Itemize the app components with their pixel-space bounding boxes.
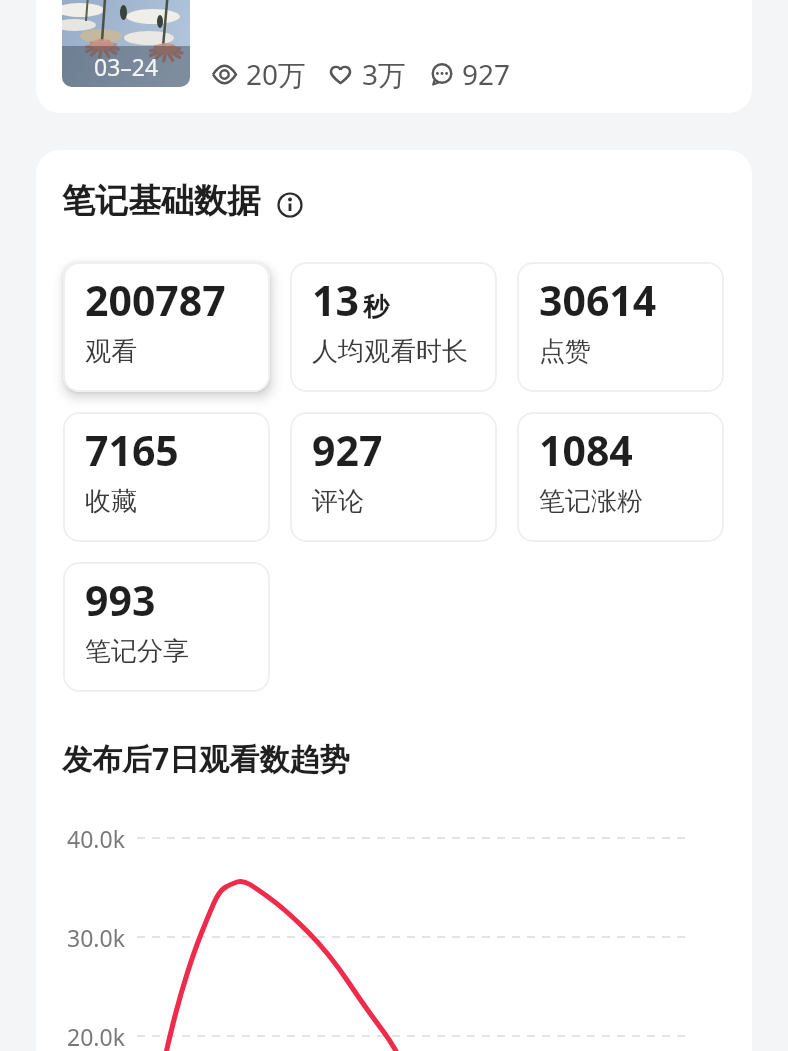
button[interactable]: 13 [290,262,497,392]
staticText: 20.0k [67,1021,125,1051]
staticText: 评论 [312,485,364,518]
button[interactable]: 7165 [63,412,270,542]
button[interactable]: 993 [63,562,270,692]
staticText: 927 [312,422,383,478]
staticText: 观看 [85,335,137,368]
staticText: 发布后7日观看数趋势 [62,738,350,779]
staticText: 笔记涨粉 [539,485,643,518]
staticText: 30.0k [67,922,125,953]
staticText: 3万 [362,55,407,93]
button[interactable]: 1084 [517,412,724,542]
staticText: 927 [462,55,511,93]
staticText: 笔记基础数据 [62,180,260,222]
staticText: 人均观看时长 [312,335,468,368]
staticText: 点赞 [539,335,591,368]
button[interactable]: 200787 [63,262,270,392]
staticText: 20万 [246,55,307,93]
staticText: 200787 [85,272,226,328]
staticText: 收藏 [85,485,137,518]
staticText: 1084 [539,422,633,478]
staticText: 40.0k [67,823,125,854]
button[interactable] [277,192,303,218]
staticText: 秒 [363,291,389,324]
staticText: 03–24 [94,51,159,82]
staticText: 7165 [85,422,179,478]
staticText: 13 [312,272,359,328]
staticText: 30614 [539,272,657,328]
button[interactable]: 927 [290,412,497,542]
staticText: 993 [85,572,156,628]
button[interactable]: 30614 [517,262,724,392]
button[interactable] [36,0,752,113]
staticText: 笔记分享 [85,635,189,668]
